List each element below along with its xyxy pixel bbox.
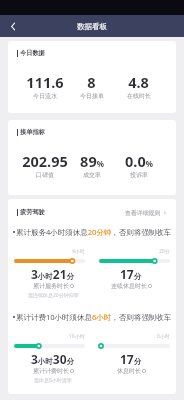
staticText: 查看详细规则 <box>125 209 161 216</box>
staticText: 4小时 <box>72 248 85 254</box>
staticText: 累计计费时长 <box>33 367 69 375</box>
staticText: 休息时长 <box>117 367 141 375</box>
staticText: 10小时 <box>69 333 85 339</box>
staticText: 疲劳驾驶 <box>20 208 45 216</box>
staticText: 成交率 <box>83 171 101 179</box>
button[interactable]: Back <box>6 19 20 33</box>
staticText: 在线时长 <box>127 92 151 100</box>
staticText: 8 <box>87 72 96 92</box>
staticText: 17分 <box>120 351 142 367</box>
staticText: 0.0% <box>125 151 153 171</box>
staticText: 3小时21分 <box>31 266 75 282</box>
staticText: 累计服务4小时须休息20分钟，否则将强制收车 <box>16 227 172 237</box>
staticText: 6小时 <box>157 333 170 339</box>
staticText: 89% <box>80 151 104 171</box>
staticText: 111.6 <box>26 72 64 92</box>
staticText: 需休息6小时清零 <box>34 377 72 384</box>
staticText: 20分 <box>159 248 170 254</box>
staticText: 累计计费10小时须休息6小时，否则将强制收车 <box>16 312 172 322</box>
staticText: 接单指标 <box>20 128 45 136</box>
staticText: 3小时30分 <box>31 351 75 367</box>
staticText: 今日接单 <box>80 92 104 100</box>
staticText: 今日数据 <box>20 49 45 57</box>
staticText: 数据看板 <box>77 22 107 31</box>
button[interactable]: 查看详细规则 <box>125 209 167 216</box>
staticText: 连续休息时长 <box>111 282 147 290</box>
staticText: 202.95 <box>22 151 68 171</box>
staticText: 投诉率 <box>130 171 148 179</box>
staticText: 17分 <box>120 266 142 282</box>
staticText: 口碑值 <box>36 171 54 179</box>
staticText: 需连续休息20分钟归零 <box>28 292 79 299</box>
staticText: 4.8 <box>128 72 149 92</box>
staticText: 累计服务时长 <box>33 282 69 290</box>
staticText: 今日流水 <box>33 92 57 100</box>
